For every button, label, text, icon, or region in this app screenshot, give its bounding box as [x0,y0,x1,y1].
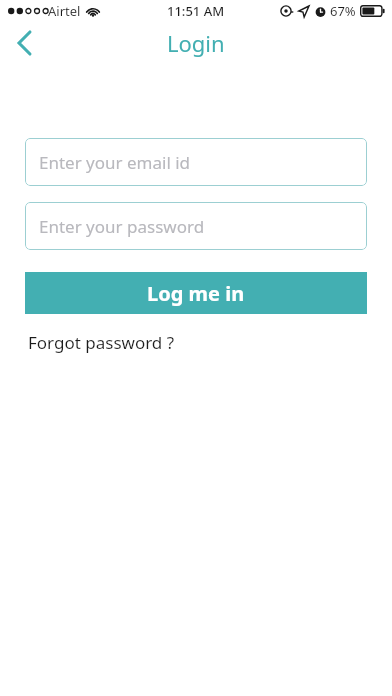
staticText: Forgot password ? [28,331,175,354]
button[interactable]: Enter your email id [25,138,367,186]
staticText: Airtel [48,2,81,20]
staticText: 67% [330,2,356,20]
button[interactable]: Log me in [25,272,367,314]
button[interactable]: Forgot password ? [28,331,175,354]
button[interactable]: Enter your password [25,202,367,250]
staticText: Enter your email id [39,151,191,174]
button[interactable]: Back [0,22,48,64]
staticText: 11:51 AM [167,2,225,20]
staticText: Enter your password [39,215,205,238]
staticText: Login [167,28,225,58]
staticText: Log me in [147,280,245,307]
